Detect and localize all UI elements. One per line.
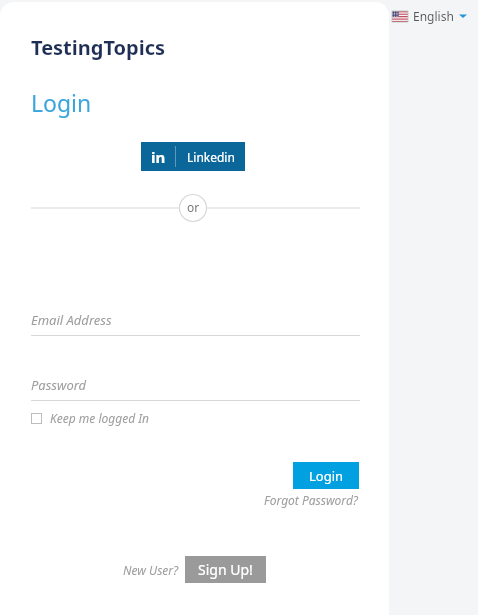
staticText: Linkedin xyxy=(187,149,235,165)
button[interactable]: Password xyxy=(31,376,360,401)
button[interactable]: Sign Up! xyxy=(185,556,266,583)
button[interactable]: in xyxy=(141,142,245,171)
button[interactable]: Email Address xyxy=(31,311,360,336)
staticText: Email Address xyxy=(31,311,112,329)
button[interactable]: Select language, English xyxy=(392,8,467,24)
staticText: New User? xyxy=(123,562,179,578)
staticText: Login xyxy=(31,87,92,118)
staticText: Keep me logged In xyxy=(50,410,150,426)
staticText: TestingTopics xyxy=(31,34,166,61)
staticText: English xyxy=(413,8,454,24)
button[interactable]: Keep me logged In xyxy=(31,410,150,426)
button[interactable]: Forgot Password? xyxy=(264,492,359,508)
staticText: Login xyxy=(309,467,344,485)
staticText: or xyxy=(187,199,200,215)
staticText: Password xyxy=(31,376,87,394)
staticText: Forgot Password? xyxy=(264,492,359,508)
button[interactable]: Login xyxy=(293,462,359,489)
staticText: in xyxy=(151,147,166,167)
staticText: Sign Up! xyxy=(198,560,253,579)
